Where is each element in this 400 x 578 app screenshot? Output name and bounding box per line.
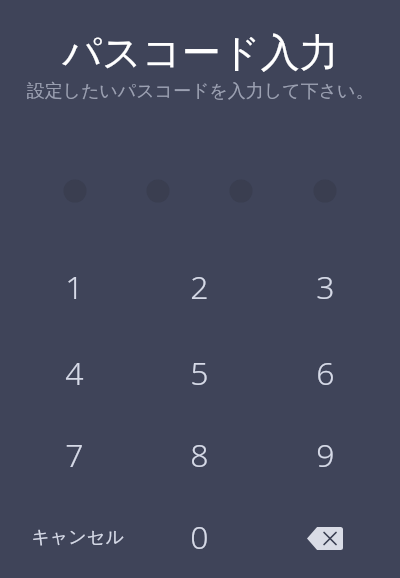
button[interactable]: 3 bbox=[270, 251, 380, 323]
staticText: 2 bbox=[190, 265, 209, 309]
staticText: 9 bbox=[316, 433, 335, 477]
button[interactable]: 2 bbox=[144, 251, 254, 323]
staticText: 0 bbox=[190, 515, 209, 559]
staticText: 4 bbox=[65, 351, 84, 395]
staticText: パスコード入力 bbox=[62, 28, 339, 77]
button[interactable]: 5 bbox=[144, 337, 254, 409]
button[interactable]: Backspace bbox=[270, 506, 380, 570]
button[interactable]: 1 bbox=[19, 251, 129, 323]
staticText: 1 bbox=[65, 265, 84, 309]
button[interactable]: 8 bbox=[144, 419, 254, 491]
button[interactable]: 9 bbox=[270, 419, 380, 491]
staticText: 6 bbox=[316, 351, 335, 395]
staticText: 3 bbox=[316, 265, 335, 309]
staticText: キャンセル bbox=[31, 526, 124, 549]
button[interactable]: キャンセル bbox=[17, 507, 137, 567]
button[interactable]: 7 bbox=[19, 419, 129, 491]
staticText: 7 bbox=[65, 433, 84, 477]
button[interactable]: 4 bbox=[19, 337, 129, 409]
staticText: 5 bbox=[190, 351, 209, 395]
staticText: 設定したいパスコードを入力して下さい。 bbox=[26, 80, 374, 103]
button[interactable]: 6 bbox=[270, 337, 380, 409]
button[interactable]: 0 bbox=[144, 505, 254, 569]
staticText: 8 bbox=[190, 433, 209, 477]
